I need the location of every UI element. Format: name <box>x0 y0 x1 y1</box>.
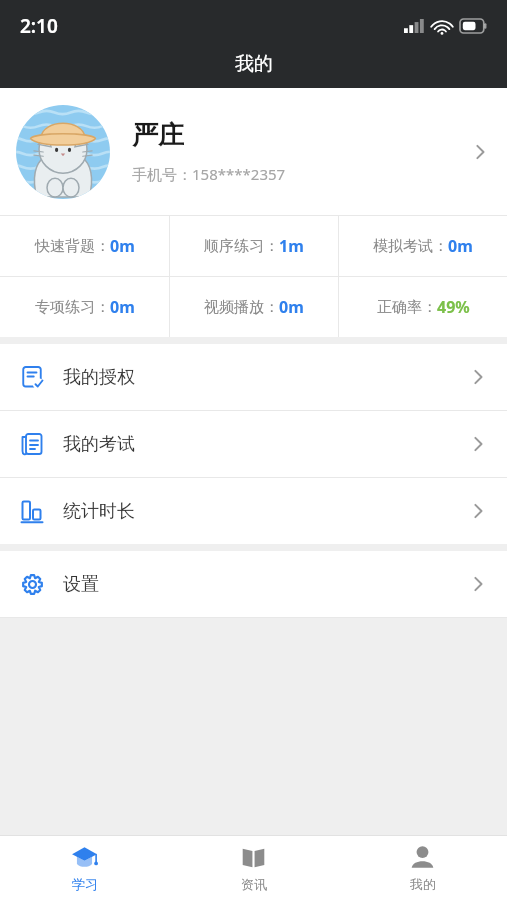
button[interactable]: 我的授权 <box>0 344 507 410</box>
staticText: 2:10 <box>20 13 58 39</box>
button[interactable]: 统计时长 <box>0 478 507 544</box>
staticText: 严庄 <box>132 119 184 152</box>
staticText: 正确率： <box>377 298 437 317</box>
staticText: 0m <box>110 296 135 318</box>
staticText: 设置 <box>63 573 467 596</box>
staticText: 快速背题： <box>35 237 110 256</box>
button[interactable]: 严庄 <box>0 88 507 215</box>
staticText: 专项练习： <box>35 298 110 317</box>
button[interactable]: 设置 <box>0 551 507 617</box>
staticText: 0m <box>448 235 473 257</box>
staticText: 模拟考试： <box>373 237 448 256</box>
staticText: 我的考试 <box>63 433 467 456</box>
button[interactable]: 资讯 <box>169 836 338 900</box>
staticText: 我的 <box>410 876 436 892</box>
staticText: 资讯 <box>241 876 267 892</box>
staticText: 视频播放： <box>204 298 279 317</box>
button[interactable]: 模拟考试： <box>339 216 507 276</box>
staticText: 0m <box>279 296 304 318</box>
staticText: 顺序练习： <box>204 237 279 256</box>
button[interactable]: 我的考试 <box>0 411 507 477</box>
staticText: 学习 <box>72 876 98 892</box>
button[interactable]: 我的 <box>338 836 507 900</box>
staticText: 0m <box>110 235 135 257</box>
staticText: 统计时长 <box>63 500 467 523</box>
button[interactable]: 专项练习： <box>0 277 169 337</box>
staticText: 手机号：158****2357 <box>132 164 286 184</box>
button[interactable]: 视频播放： <box>170 277 338 337</box>
button[interactable]: 学习 <box>0 836 169 900</box>
button[interactable]: 正确率： <box>339 277 507 337</box>
staticText: 我的 <box>235 52 273 76</box>
staticText: 我的授权 <box>63 366 467 389</box>
staticText: 1m <box>279 235 304 257</box>
button[interactable]: 顺序练习： <box>170 216 338 276</box>
button[interactable]: 快速背题： <box>0 216 169 276</box>
staticText: 49% <box>437 296 470 318</box>
